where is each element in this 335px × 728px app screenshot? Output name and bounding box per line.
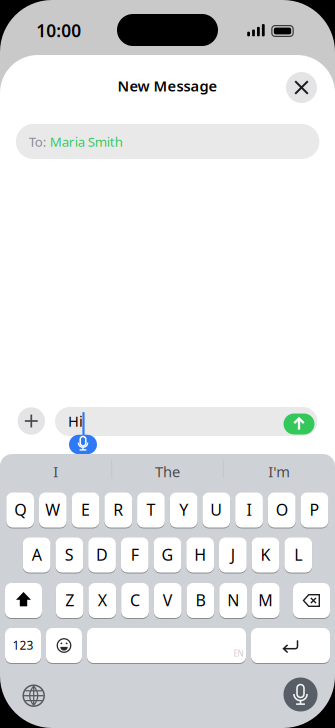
button[interactable]: Q	[6, 492, 34, 528]
staticText: V	[163, 589, 173, 611]
button[interactable]: B	[187, 582, 214, 618]
staticText: F	[131, 544, 139, 565]
staticText: EN	[233, 648, 243, 659]
staticText: U	[210, 499, 222, 520]
button[interactable]: U	[202, 492, 230, 528]
button[interactable]: A	[23, 537, 50, 573]
staticText: E	[81, 499, 90, 520]
button[interactable]: E	[72, 492, 99, 528]
staticText: W	[45, 499, 60, 520]
button[interactable]: C	[121, 582, 149, 618]
staticText: I	[247, 499, 252, 520]
button[interactable]: O	[268, 492, 296, 528]
button[interactable]: M	[252, 582, 280, 618]
button[interactable]: L	[284, 537, 312, 573]
staticText: I	[53, 462, 58, 481]
staticText: N	[227, 589, 239, 611]
button[interactable]: F	[121, 537, 149, 573]
staticText: X	[98, 589, 107, 611]
button[interactable]: 123	[5, 627, 41, 663]
button[interactable]: N	[219, 582, 247, 618]
staticText: P	[309, 499, 319, 520]
staticText: L	[294, 544, 302, 565]
staticText: H	[194, 544, 206, 565]
staticText: K	[261, 544, 271, 565]
staticText: O	[276, 499, 288, 520]
button[interactable]: Y	[170, 492, 197, 528]
button[interactable]: X	[88, 582, 116, 618]
button[interactable]: The	[115, 456, 219, 486]
staticText: G	[161, 544, 173, 565]
button[interactable]	[46, 627, 82, 663]
button[interactable]: T	[137, 492, 165, 528]
staticText: Z	[65, 589, 74, 611]
staticText: A	[32, 544, 42, 565]
button[interactable]: J	[219, 537, 247, 573]
button[interactable]	[251, 627, 330, 663]
button[interactable]	[22, 684, 46, 708]
staticText: R	[113, 499, 123, 520]
staticText: C	[130, 589, 140, 611]
staticText: To:	[29, 133, 47, 150]
staticText: 10:00	[36, 19, 81, 42]
staticText: 123	[12, 637, 33, 653]
button[interactable]: I'm	[227, 456, 331, 486]
button[interactable]: I	[235, 492, 263, 528]
button[interactable]: D	[88, 537, 116, 573]
staticText: M	[258, 589, 273, 611]
button[interactable]: To:	[16, 124, 319, 159]
staticText: Y	[179, 499, 188, 520]
button[interactable]	[5, 582, 42, 618]
button[interactable]: I	[4, 456, 108, 486]
staticText: J	[231, 544, 235, 565]
staticText: D	[96, 544, 108, 565]
button[interactable]: R	[104, 492, 132, 528]
button[interactable]	[18, 407, 45, 435]
button[interactable]: P	[301, 492, 328, 528]
staticText: I'm	[268, 462, 290, 481]
button[interactable]: K	[252, 537, 279, 573]
button[interactable]: V	[154, 582, 182, 618]
staticText: Q	[14, 499, 26, 520]
staticText: New Message	[117, 76, 217, 96]
button[interactable]: W	[39, 492, 67, 528]
button[interactable]	[87, 627, 246, 663]
button[interactable]: Z	[56, 582, 83, 618]
button[interactable]	[286, 72, 317, 103]
button[interactable]	[283, 677, 317, 711]
staticText: The	[155, 462, 180, 481]
staticText: Hi	[68, 411, 83, 431]
button[interactable]: G	[154, 537, 181, 573]
button[interactable]	[283, 413, 314, 434]
staticText: Maria Smith	[50, 133, 123, 150]
button[interactable]	[293, 582, 330, 618]
button[interactable]: H	[186, 537, 214, 573]
staticText: B	[195, 589, 205, 611]
button[interactable]: S	[55, 537, 83, 573]
button[interactable]: Hi	[55, 407, 317, 436]
staticText: S	[65, 544, 74, 565]
staticText: T	[146, 499, 155, 520]
